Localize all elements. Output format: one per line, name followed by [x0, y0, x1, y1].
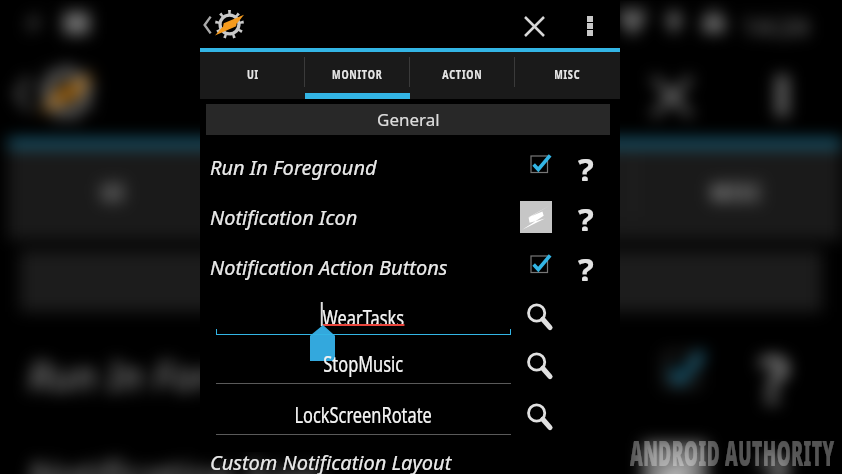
staticText: Custom Notification Layout	[210, 449, 452, 474]
staticText: MISC	[711, 175, 764, 207]
staticText: UI	[101, 175, 125, 207]
button[interactable]: Close	[631, 56, 711, 135]
button[interactable]	[665, 354, 709, 397]
button[interactable]: Notification Icon	[200, 192, 620, 242]
button[interactable]: LockScreenRotate	[216, 388, 511, 435]
button[interactable]: Help	[569, 247, 603, 281]
staticText: Notification Action Buttons	[210, 254, 448, 281]
button[interactable]: More options	[570, 6, 610, 46]
button[interactable]: WearTasks	[216, 288, 511, 335]
button[interactable]: General	[206, 104, 610, 135]
staticText: ANDROID AUTHORITY	[630, 429, 835, 474]
staticText: MONITOR	[270, 175, 371, 207]
button[interactable]: MISC	[515, 52, 620, 99]
staticText: StopMusic	[323, 350, 404, 379]
staticText: General	[359, 258, 484, 304]
staticText: ?	[578, 147, 594, 181]
staticText: ACTION	[442, 66, 483, 82]
button[interactable]: Close	[514, 6, 554, 46]
button[interactable]: MISC	[633, 147, 842, 240]
button[interactable]: Back	[203, 10, 244, 39]
button[interactable]: Notification Action Buttons	[200, 242, 620, 292]
staticText: ?	[578, 247, 594, 281]
button[interactable]: General	[20, 250, 822, 312]
button[interactable]	[531, 156, 553, 178]
button[interactable]: UI	[200, 52, 305, 99]
staticText: UI	[247, 66, 259, 82]
staticText: ?	[758, 435, 790, 474]
button[interactable]: Notification Icon	[8, 425, 842, 474]
button[interactable]: StopMusic	[216, 337, 511, 384]
button[interactable]	[531, 256, 553, 278]
staticText: ACTION	[489, 175, 569, 207]
button[interactable]: Help	[569, 197, 603, 231]
staticText: MISC	[554, 66, 581, 82]
staticText: Notification Icon	[28, 449, 322, 474]
staticText: LockScreenRotate	[294, 401, 433, 430]
button[interactable]	[520, 201, 552, 233]
button[interactable]: MONITOR	[216, 147, 425, 240]
button[interactable]: Search	[523, 400, 557, 434]
staticText: 14:24	[742, 8, 810, 44]
staticText: MONITOR	[332, 66, 383, 82]
staticText: Run In Foreground	[210, 154, 377, 181]
button[interactable]: Run In Foreground	[8, 326, 842, 425]
button[interactable]: Help	[740, 336, 808, 403]
button[interactable]: ACTION	[410, 52, 515, 99]
button[interactable]: ACTION	[425, 147, 633, 240]
button[interactable]: Back	[14, 64, 95, 121]
staticText: ?	[758, 336, 790, 403]
button[interactable]: More options	[742, 56, 822, 135]
staticText: Notification Icon	[210, 204, 358, 231]
staticText: WearTasks	[322, 304, 404, 333]
staticText: Run In Foreground	[28, 350, 359, 403]
button[interactable]: Help	[569, 147, 603, 181]
staticText: General	[377, 108, 440, 131]
button[interactable]: Help	[740, 435, 808, 474]
button[interactable]: UI	[8, 147, 216, 240]
button[interactable]: Search	[523, 349, 557, 383]
staticText: ?	[578, 197, 594, 231]
button[interactable]: Search	[523, 300, 557, 334]
button[interactable]: MONITOR	[305, 52, 410, 99]
button[interactable]: Run In Foreground	[200, 142, 620, 192]
button[interactable]	[643, 443, 707, 474]
